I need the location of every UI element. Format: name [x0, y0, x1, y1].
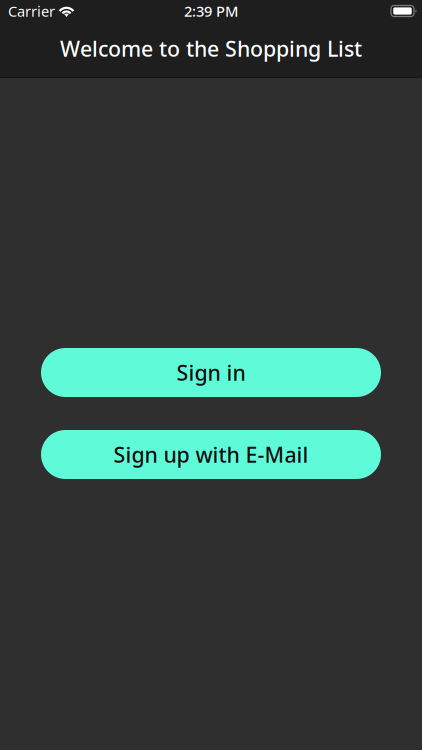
- button[interactable]: Sign in: [41, 348, 381, 397]
- staticText: Carrier: [8, 1, 55, 21]
- staticText: Sign up with E-Mail: [113, 440, 308, 469]
- staticText: Sign in: [176, 358, 245, 387]
- staticText: Welcome to the Shopping List: [60, 34, 362, 63]
- button[interactable]: Sign up with E-Mail: [41, 430, 381, 479]
- staticText: 2:39 PM: [184, 1, 238, 21]
